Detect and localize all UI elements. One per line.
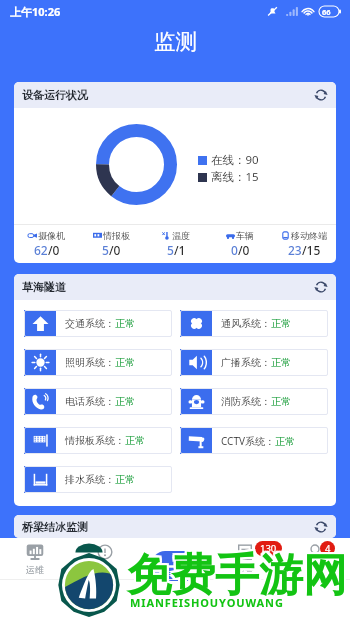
staticText: 正常 <box>275 435 295 448</box>
button[interactable]: 温度 <box>144 225 208 263</box>
button[interactable]: CCTV系统： <box>180 427 328 454</box>
button[interactable]: 排水系统： <box>24 466 172 493</box>
staticText: 62 <box>34 242 48 258</box>
staticText: 5 <box>102 242 109 258</box>
staticText: 正常 <box>115 473 135 486</box>
button[interactable]: 刷新 <box>313 519 329 535</box>
staticText: 设备运行状况 <box>22 88 88 102</box>
staticText: /1 <box>174 242 186 258</box>
staticText: 免费手游网 <box>129 546 349 601</box>
staticText: 23 <box>288 242 302 258</box>
staticText: 正常 <box>271 317 291 330</box>
staticText: 正常 <box>115 395 135 408</box>
staticText: 免费手游网 <box>127 546 347 601</box>
staticText: 通风系统： <box>221 317 271 330</box>
staticText: 交通系统： <box>65 317 115 330</box>
staticText: 免费手游网 <box>125 550 345 605</box>
staticText: 离线：15 <box>211 169 259 185</box>
staticText: 运维 <box>26 564 44 575</box>
staticText: 排水系统： <box>65 473 115 486</box>
staticText: 照明系统： <box>65 356 115 369</box>
button[interactable]: 照明系统： <box>24 349 172 376</box>
staticText: /0 <box>48 242 60 258</box>
staticText: MIANFEISHOUYOUWANG <box>130 595 284 610</box>
staticText: 情报板 <box>103 230 130 241</box>
staticText: 0 <box>231 242 238 258</box>
staticText: 4 <box>325 542 331 555</box>
staticText: 桥梁结冰监测 <box>22 520 88 534</box>
staticText: 情报板系统： <box>65 434 125 447</box>
staticText: /0 <box>238 242 250 258</box>
staticText: 正常 <box>115 317 135 330</box>
staticText: 免费手游网 <box>127 548 347 603</box>
staticText: 广播系统： <box>221 356 271 369</box>
button[interactable]: 移动终端 <box>272 225 336 263</box>
staticText: 移动终端 <box>291 230 327 241</box>
button[interactable]: 广播系统： <box>180 349 328 376</box>
staticText: 草海隧道 <box>22 280 66 294</box>
staticText: 正常 <box>115 356 135 369</box>
button[interactable]: 摄像机 <box>14 225 79 263</box>
button[interactable]: 电话系统： <box>24 388 172 415</box>
button[interactable]: 车辆 <box>208 225 272 263</box>
staticText: 正常 <box>271 395 291 408</box>
staticText: 电话系统： <box>65 395 115 408</box>
staticText: 免费手游网 <box>127 550 347 605</box>
staticText: 免费手游网 <box>125 548 345 603</box>
staticText: 监测 <box>154 28 197 55</box>
button[interactable]: 情报板系统： <box>24 427 172 454</box>
staticText: 摄像机 <box>38 230 65 241</box>
staticText: /0 <box>109 242 121 258</box>
staticText: 130 <box>260 542 277 555</box>
button[interactable]: 情报板 <box>79 225 144 263</box>
button[interactable]: 刷新 <box>313 87 329 103</box>
staticText: 消防系统： <box>221 395 271 408</box>
staticText: 5 <box>167 242 174 258</box>
button[interactable]: 通风系统： <box>180 310 328 337</box>
staticText: 免费手游网 <box>129 550 349 605</box>
staticText: 正常 <box>125 434 145 447</box>
staticText: 上午10:26 <box>10 4 61 19</box>
staticText: 温度 <box>172 230 190 241</box>
staticText: 车辆 <box>236 230 254 241</box>
button[interactable]: 视频 <box>70 538 140 579</box>
staticText: 66 <box>322 7 331 17</box>
button[interactable]: 运维 <box>0 538 70 579</box>
staticText: 免费手游网 <box>125 546 345 601</box>
button[interactable]: 我的 <box>280 538 350 579</box>
staticText: 我的 <box>306 564 324 575</box>
staticText: 视频 <box>96 564 114 575</box>
button[interactable]: 消防系统： <box>180 388 328 415</box>
button[interactable]: 报警 <box>210 538 280 579</box>
staticText: 免费手游网 <box>129 548 349 603</box>
staticText: 正常 <box>271 356 291 369</box>
staticText: /15 <box>302 242 321 258</box>
staticText: 报警 <box>236 564 254 575</box>
button[interactable]: 刷新 <box>313 279 329 295</box>
button[interactable]: 新增 <box>152 551 198 581</box>
button[interactable]: 交通系统： <box>24 310 172 337</box>
staticText: 在线：90 <box>211 152 259 168</box>
staticText: CCTV系统： <box>221 434 275 448</box>
